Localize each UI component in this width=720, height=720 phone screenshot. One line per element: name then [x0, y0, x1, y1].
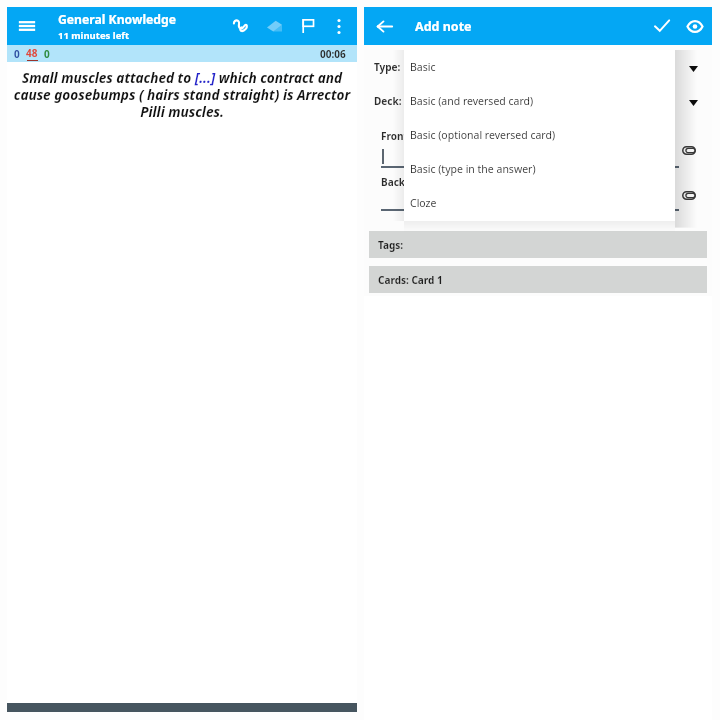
- staticText: Back: [381, 175, 405, 189]
- button[interactable]: Basic: [404, 50, 675, 84]
- staticText: Basic (optional reversed card): [410, 128, 556, 142]
- staticText: 0: [44, 47, 50, 61]
- staticText: Cloze: [410, 196, 437, 210]
- button[interactable]: Erase whiteboard: [257, 7, 291, 45]
- button[interactable]: More options: [325, 7, 353, 45]
- staticText: General Knowledge: [58, 11, 177, 28]
- staticText: Front: [381, 129, 408, 143]
- button[interactable]: Choose note type: [681, 57, 705, 81]
- staticText: Basic (and reversed card): [410, 94, 534, 108]
- button[interactable]: Basic (optional reversed card): [404, 118, 675, 152]
- button[interactable]: Toggle whiteboard: [223, 7, 257, 45]
- button[interactable]: Save note: [645, 7, 678, 45]
- button[interactable]: Attach media to back: [677, 183, 701, 207]
- button[interactable]: Tags:: [369, 231, 707, 258]
- button[interactable]: Attach media to front: [677, 138, 701, 162]
- button[interactable]: Basic (type in the answer): [404, 152, 675, 186]
- staticText: Basic (type in the answer): [410, 162, 536, 176]
- staticText: 0: [14, 47, 20, 61]
- button[interactable]: Open navigation drawer: [7, 7, 47, 45]
- staticText: Deck:: [374, 94, 402, 108]
- button[interactable]: Cloze: [404, 186, 675, 220]
- staticText: Small muscles attached to [...] which co…: [10, 68, 354, 121]
- button[interactable]: Back: [364, 7, 404, 45]
- staticText: 48: [26, 46, 38, 60]
- staticText: Add note: [415, 18, 472, 35]
- button[interactable]: Flag card: [291, 7, 325, 45]
- staticText: Tags:: [378, 238, 404, 252]
- staticText: Basic: [410, 60, 436, 74]
- staticText: Cards: Card 1: [378, 273, 443, 287]
- staticText: Type:: [374, 60, 401, 74]
- staticText: 11 minutes left: [58, 29, 130, 42]
- button[interactable]: Choose deck: [681, 91, 705, 115]
- button[interactable]: Preview note: [678, 7, 711, 45]
- button[interactable]: Cards: Card 1: [369, 266, 707, 293]
- button[interactable]: Basic (and reversed card): [404, 84, 675, 118]
- staticText: 00:06: [320, 47, 346, 61]
